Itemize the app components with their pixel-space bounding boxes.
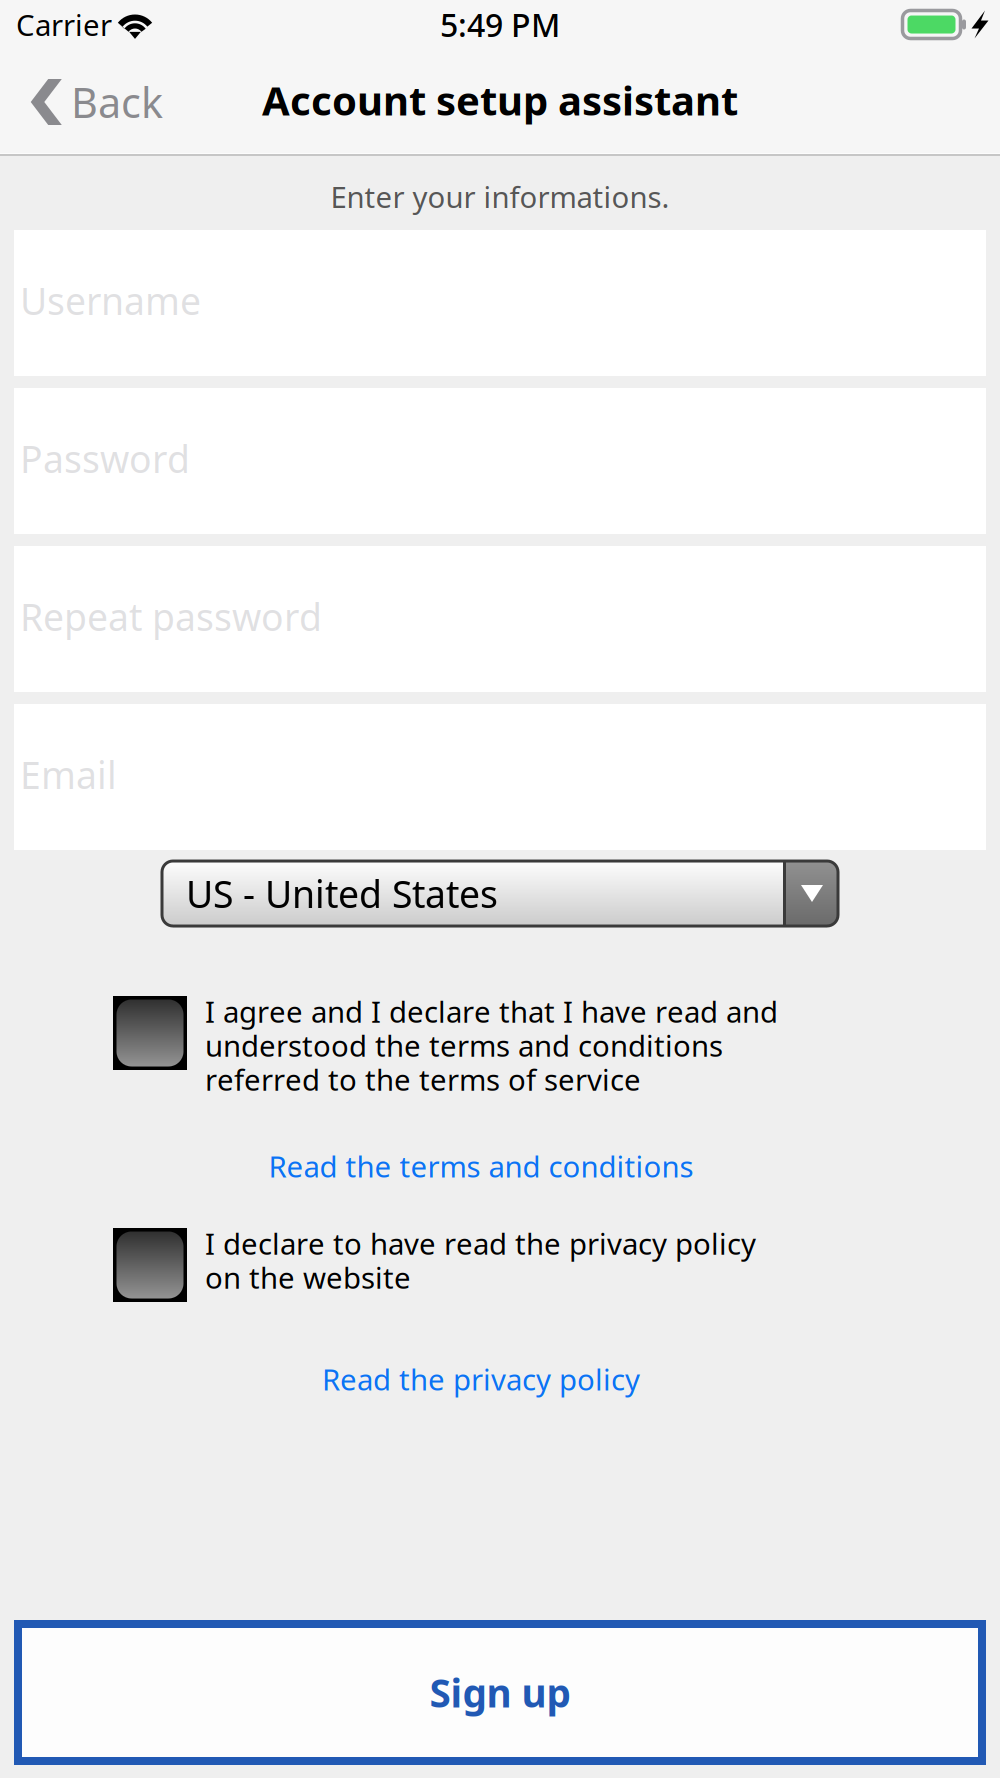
button[interactable]: I agree to the terms and conditions: [113, 996, 187, 1070]
staticText: Read the privacy policy: [322, 1359, 640, 1398]
button[interactable]: US - United States: [162, 861, 838, 926]
staticText: Read the terms and conditions: [268, 1146, 693, 1185]
button[interactable]: Back: [0, 57, 177, 153]
staticText: Carrier: [16, 5, 112, 44]
button[interactable]: Read the terms and conditions: [0, 1138, 1000, 1194]
staticText: US - United States: [186, 869, 498, 918]
staticText: Password: [20, 434, 190, 483]
staticText: I agree and I declare that I have read a…: [205, 992, 778, 1099]
staticText: 5:49 PM: [440, 3, 560, 46]
staticText: Repeat password: [20, 592, 322, 641]
staticText: Back: [71, 75, 163, 129]
button[interactable]: Repeat password: [14, 546, 986, 692]
staticText: Sign up: [429, 1667, 570, 1718]
button[interactable]: Read the privacy policy: [0, 1346, 1000, 1412]
button[interactable]: I declare I have read the privacy policy: [113, 1228, 187, 1302]
staticText: I declare to have read the privacy polic…: [205, 1224, 756, 1297]
button[interactable]: Sign up: [14, 1620, 986, 1765]
staticText: Account setup assistant: [262, 73, 738, 126]
staticText: Username: [20, 276, 201, 325]
staticText: Email: [20, 750, 117, 799]
staticText: Enter your informations.: [330, 177, 669, 216]
